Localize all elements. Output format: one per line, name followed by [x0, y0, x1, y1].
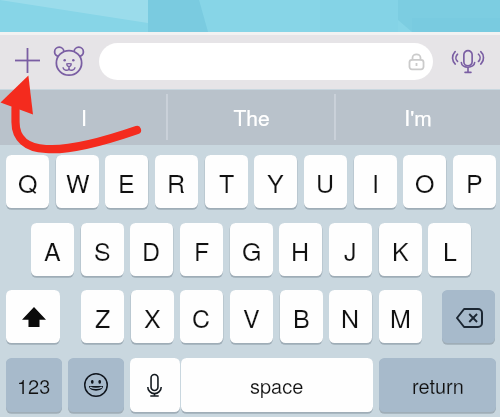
button[interactable]: L: [428, 223, 471, 276]
staticText: E: [118, 164, 135, 200]
button[interactable]: Emoji: [68, 358, 124, 412]
button[interactable]: A: [31, 223, 74, 276]
button[interactable]: K: [379, 223, 422, 276]
staticText: M: [390, 299, 411, 335]
button[interactable]: I: [354, 155, 397, 208]
button[interactable]: M: [379, 290, 422, 343]
button[interactable]: G: [230, 223, 273, 276]
staticText: F: [194, 232, 210, 268]
button[interactable]: H: [279, 223, 322, 276]
button[interactable]: E: [105, 155, 148, 208]
staticText: I'm: [404, 102, 432, 132]
staticText: T: [219, 164, 235, 200]
button[interactable]: I'm: [335, 89, 500, 145]
button[interactable]: U: [304, 155, 347, 208]
staticText: Z: [95, 299, 111, 335]
staticText: P: [466, 164, 483, 200]
staticText: D: [142, 232, 161, 268]
button[interactable]: Backspace: [442, 290, 495, 343]
button[interactable]: [99, 43, 433, 80]
staticText: space: [250, 371, 304, 400]
button[interactable]: return: [379, 358, 496, 412]
button[interactable]: N: [329, 290, 372, 343]
staticText: K: [392, 232, 409, 268]
button[interactable]: X: [131, 290, 174, 343]
button[interactable]: O: [403, 155, 446, 208]
staticText: Y: [267, 164, 284, 200]
staticText: H: [291, 232, 310, 268]
button[interactable]: J: [329, 223, 372, 276]
staticText: return: [412, 371, 464, 400]
staticText: S: [94, 232, 111, 268]
staticText: I: [372, 164, 379, 200]
button[interactable]: 123: [6, 358, 62, 412]
button[interactable]: Add attachment: [9, 42, 46, 79]
button[interactable]: I: [0, 89, 167, 145]
button[interactable]: Q: [6, 155, 49, 208]
staticText: B: [293, 299, 310, 335]
button[interactable]: S: [81, 223, 124, 276]
staticText: G: [242, 232, 262, 268]
button[interactable]: Z: [81, 290, 124, 343]
button[interactable]: F: [180, 223, 223, 276]
button[interactable]: V: [230, 290, 273, 343]
staticText: U: [316, 164, 335, 200]
staticText: I: [81, 102, 87, 132]
staticText: W: [66, 164, 90, 200]
button[interactable]: T: [205, 155, 248, 208]
button[interactable]: Y: [254, 155, 297, 208]
button[interactable]: B: [280, 290, 323, 343]
button[interactable]: Shift: [6, 290, 60, 343]
button[interactable]: space: [181, 358, 373, 412]
button[interactable]: C: [180, 290, 223, 343]
button[interactable]: W: [56, 155, 99, 208]
button[interactable]: D: [130, 223, 173, 276]
staticText: V: [243, 299, 260, 335]
button[interactable]: Voice message: [448, 42, 488, 82]
staticText: A: [44, 232, 61, 268]
staticText: J: [344, 232, 357, 268]
staticText: C: [192, 299, 211, 335]
button[interactable]: R: [155, 155, 198, 208]
button[interactable]: Dictation: [130, 358, 180, 412]
staticText: X: [144, 299, 161, 335]
staticText: Q: [18, 164, 38, 200]
staticText: The: [233, 102, 270, 132]
staticText: R: [167, 164, 186, 200]
staticText: O: [415, 164, 435, 200]
staticText: 123: [17, 371, 51, 400]
staticText: N: [341, 299, 360, 335]
button[interactable]: Stickers: [50, 42, 87, 79]
button[interactable]: The: [167, 89, 335, 145]
staticText: L: [443, 232, 457, 268]
button[interactable]: P: [453, 155, 496, 208]
